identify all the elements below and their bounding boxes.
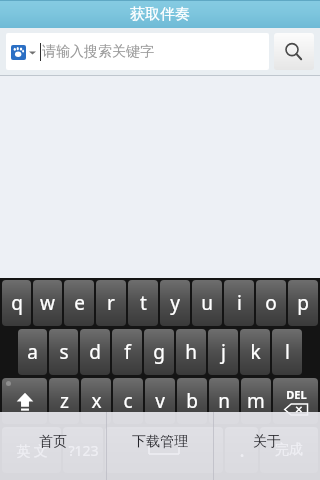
button[interactable]: 关于 xyxy=(214,412,320,480)
button[interactable]: b xyxy=(177,378,207,424)
staticText: b xyxy=(186,388,198,414)
staticText: e xyxy=(74,290,85,316)
button[interactable]: Search xyxy=(274,33,314,70)
button[interactable]: 完成 xyxy=(260,427,318,473)
staticText: DEL xyxy=(286,387,307,402)
button[interactable]: r xyxy=(96,280,126,326)
staticText: 下载管理 xyxy=(132,433,188,451)
button[interactable]: c xyxy=(113,378,143,424)
staticText: g xyxy=(153,339,165,365)
button[interactable]: Search engine xyxy=(11,45,26,60)
staticText: o xyxy=(265,290,277,316)
staticText: ?123 xyxy=(68,441,99,460)
staticText: p xyxy=(297,290,309,316)
staticText: s xyxy=(59,339,69,365)
staticText: y xyxy=(170,290,180,316)
button[interactable]: x xyxy=(81,378,111,424)
staticText: u xyxy=(201,290,213,316)
button[interactable]: Delete xyxy=(273,378,318,424)
button[interactable]: q xyxy=(2,280,31,326)
button[interactable]: ?123 xyxy=(63,427,103,473)
button[interactable]: Shift xyxy=(2,378,47,424)
staticText: r xyxy=(107,290,115,316)
staticText: c xyxy=(123,388,133,414)
staticText: 英 文 xyxy=(16,441,48,460)
button[interactable]: 首页 xyxy=(0,412,106,480)
staticText: t xyxy=(140,290,147,316)
staticText: 获取伴奏 xyxy=(130,5,190,24)
button[interactable]: z xyxy=(49,378,79,424)
staticText: z xyxy=(60,388,69,414)
staticText: v xyxy=(155,388,165,414)
button[interactable]: Space xyxy=(105,427,223,473)
staticText: n xyxy=(218,388,230,414)
staticText: h xyxy=(185,339,197,365)
staticText: l xyxy=(285,339,290,365)
button[interactable]: k xyxy=(240,329,270,375)
button[interactable]: l xyxy=(272,329,302,375)
staticText: d xyxy=(89,339,101,365)
button[interactable]: u xyxy=(192,280,222,326)
staticText: 请输入搜索关键字 xyxy=(42,43,154,61)
staticText: a xyxy=(27,339,38,365)
button[interactable]: d xyxy=(80,329,110,375)
button[interactable]: e xyxy=(64,280,94,326)
staticText: w xyxy=(40,290,55,316)
staticText: j xyxy=(221,339,226,365)
button[interactable]: s xyxy=(49,329,78,375)
staticText: m xyxy=(247,388,265,414)
staticText: q xyxy=(11,290,23,316)
button[interactable]: j xyxy=(208,329,238,375)
button[interactable]: 英 文 xyxy=(2,427,61,473)
button[interactable]: a xyxy=(18,329,47,375)
button[interactable]: h xyxy=(176,329,206,375)
button[interactable]: Search engine xyxy=(6,33,269,70)
button[interactable]: v xyxy=(145,378,175,424)
staticText: . xyxy=(239,437,245,463)
staticText: 首页 xyxy=(39,433,67,451)
staticText: i xyxy=(237,290,242,316)
button[interactable]: . xyxy=(225,427,258,473)
staticText: f xyxy=(124,339,131,365)
button[interactable]: y xyxy=(160,280,190,326)
button[interactable]: t xyxy=(128,280,158,326)
staticText: 关于 xyxy=(253,433,281,451)
button[interactable]: g xyxy=(144,329,174,375)
button[interactable]: n xyxy=(209,378,239,424)
button[interactable]: i xyxy=(224,280,254,326)
button[interactable]: f xyxy=(112,329,142,375)
button[interactable]: w xyxy=(33,280,62,326)
staticText: x xyxy=(91,388,102,414)
button[interactable]: 下载管理 xyxy=(107,412,213,480)
staticText: 完成 xyxy=(275,441,303,459)
button[interactable]: p xyxy=(288,280,318,326)
staticText: k xyxy=(250,339,261,365)
button[interactable]: m xyxy=(241,378,271,424)
button[interactable]: o xyxy=(256,280,286,326)
